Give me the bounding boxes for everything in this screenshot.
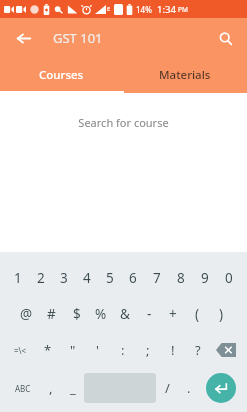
button[interactable]: + <box>161 296 185 332</box>
button[interactable]: 8 <box>169 260 193 296</box>
button[interactable]: - <box>137 296 161 332</box>
staticText: ! <box>171 341 175 359</box>
button[interactable]: _ <box>62 368 84 408</box>
button[interactable]: 2 <box>29 260 52 296</box>
button[interactable]: * <box>36 332 60 368</box>
button[interactable]: 7 <box>145 260 169 296</box>
button[interactable]: ABC <box>5 368 40 408</box>
staticText: $ <box>73 305 81 323</box>
staticText: % <box>95 305 107 323</box>
staticText: & <box>120 305 130 323</box>
staticText: ? <box>195 341 201 359</box>
staticText: 5 <box>106 269 114 287</box>
button[interactable]: 4 <box>75 260 98 296</box>
staticText: PM <box>178 5 188 14</box>
button[interactable]: & <box>113 296 137 332</box>
staticText: # <box>47 305 56 323</box>
staticText: , <box>49 379 53 397</box>
button[interactable]: ? <box>185 332 210 368</box>
button[interactable]: 6 <box>121 260 145 296</box>
staticText: * <box>44 341 52 359</box>
staticText: - <box>147 305 152 323</box>
button[interactable]: # <box>39 296 64 332</box>
staticText: Materials <box>159 67 211 83</box>
staticText: Search for course <box>0 115 247 130</box>
staticText: ; <box>146 341 150 359</box>
staticText: @ <box>20 305 33 323</box>
staticText: ' <box>96 341 99 359</box>
staticText: ABC <box>15 383 31 394</box>
button[interactable]: : <box>110 332 135 368</box>
staticText: ) <box>219 305 224 323</box>
button[interactable]: 0 <box>217 260 241 296</box>
button[interactable]: ! <box>160 332 185 368</box>
staticText: 4 <box>83 269 91 287</box>
staticText: _ <box>70 379 76 397</box>
button[interactable]: ; <box>135 332 160 368</box>
staticText: Courses <box>39 67 84 83</box>
staticText: / <box>165 379 170 397</box>
staticText: 9 <box>201 269 209 287</box>
staticText: 8 <box>177 269 185 287</box>
button[interactable]: ) <box>209 296 233 332</box>
staticText: 14% <box>136 4 152 15</box>
button[interactable]: Back <box>11 26 35 50</box>
button[interactable]: " <box>60 332 85 368</box>
button[interactable]: , <box>40 368 62 408</box>
staticText: ( <box>195 305 200 323</box>
staticText: + <box>169 305 177 323</box>
button[interactable]: / <box>156 368 178 408</box>
staticText: " <box>70 341 76 359</box>
button[interactable]: Courses <box>0 57 123 93</box>
button[interactable]: . <box>178 368 200 408</box>
button[interactable]: Search <box>212 25 238 51</box>
staticText: =\< <box>14 345 27 356</box>
staticText: 6 <box>129 269 137 287</box>
button[interactable]: @ <box>14 296 39 332</box>
button[interactable]: 5 <box>98 260 121 296</box>
staticText: 7 <box>153 269 161 287</box>
button[interactable]: =\< <box>5 332 36 368</box>
button[interactable]: ( <box>185 296 209 332</box>
staticText: 0 <box>225 269 233 287</box>
button[interactable]: Enter <box>200 368 242 408</box>
button[interactable]: 1 <box>6 260 29 296</box>
staticText: 2 <box>37 269 45 287</box>
button[interactable]: 9 <box>193 260 217 296</box>
staticText: : <box>121 341 125 359</box>
staticText: . <box>187 379 191 397</box>
button[interactable]: % <box>89 296 113 332</box>
staticText: GST 101 <box>53 29 103 47</box>
button[interactable]: 3 <box>52 260 75 296</box>
button[interactable]: Backspace <box>210 332 242 368</box>
button[interactable]: ' <box>85 332 110 368</box>
button[interactable]: $ <box>64 296 89 332</box>
button[interactable]: Materials <box>123 57 247 93</box>
staticText: E <box>107 5 111 13</box>
staticText: 1 <box>14 269 22 287</box>
staticText: 3 <box>60 269 68 287</box>
staticText: 1:34 <box>157 3 176 16</box>
